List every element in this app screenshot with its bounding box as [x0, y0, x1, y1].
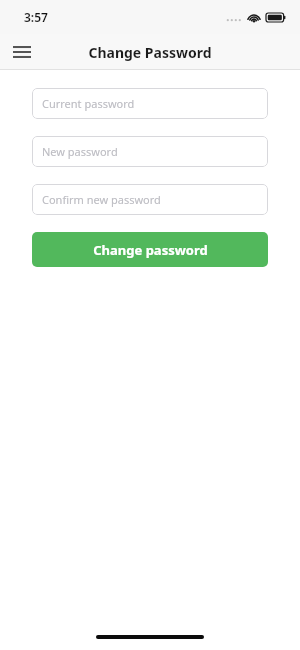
staticText: Current password	[42, 96, 135, 111]
staticText: Confirm new password	[42, 192, 161, 207]
staticText: Change Password	[88, 43, 212, 62]
staticText: New password	[42, 144, 118, 159]
button[interactable]: Change password	[32, 232, 268, 267]
button[interactable]: Current password	[32, 88, 268, 119]
button[interactable]: Confirm new password	[32, 184, 268, 215]
staticText: Change password	[93, 241, 208, 259]
button[interactable]: New password	[32, 136, 268, 167]
button[interactable]: Open navigation menu	[0, 34, 44, 70]
staticText: 3:57	[24, 9, 48, 25]
